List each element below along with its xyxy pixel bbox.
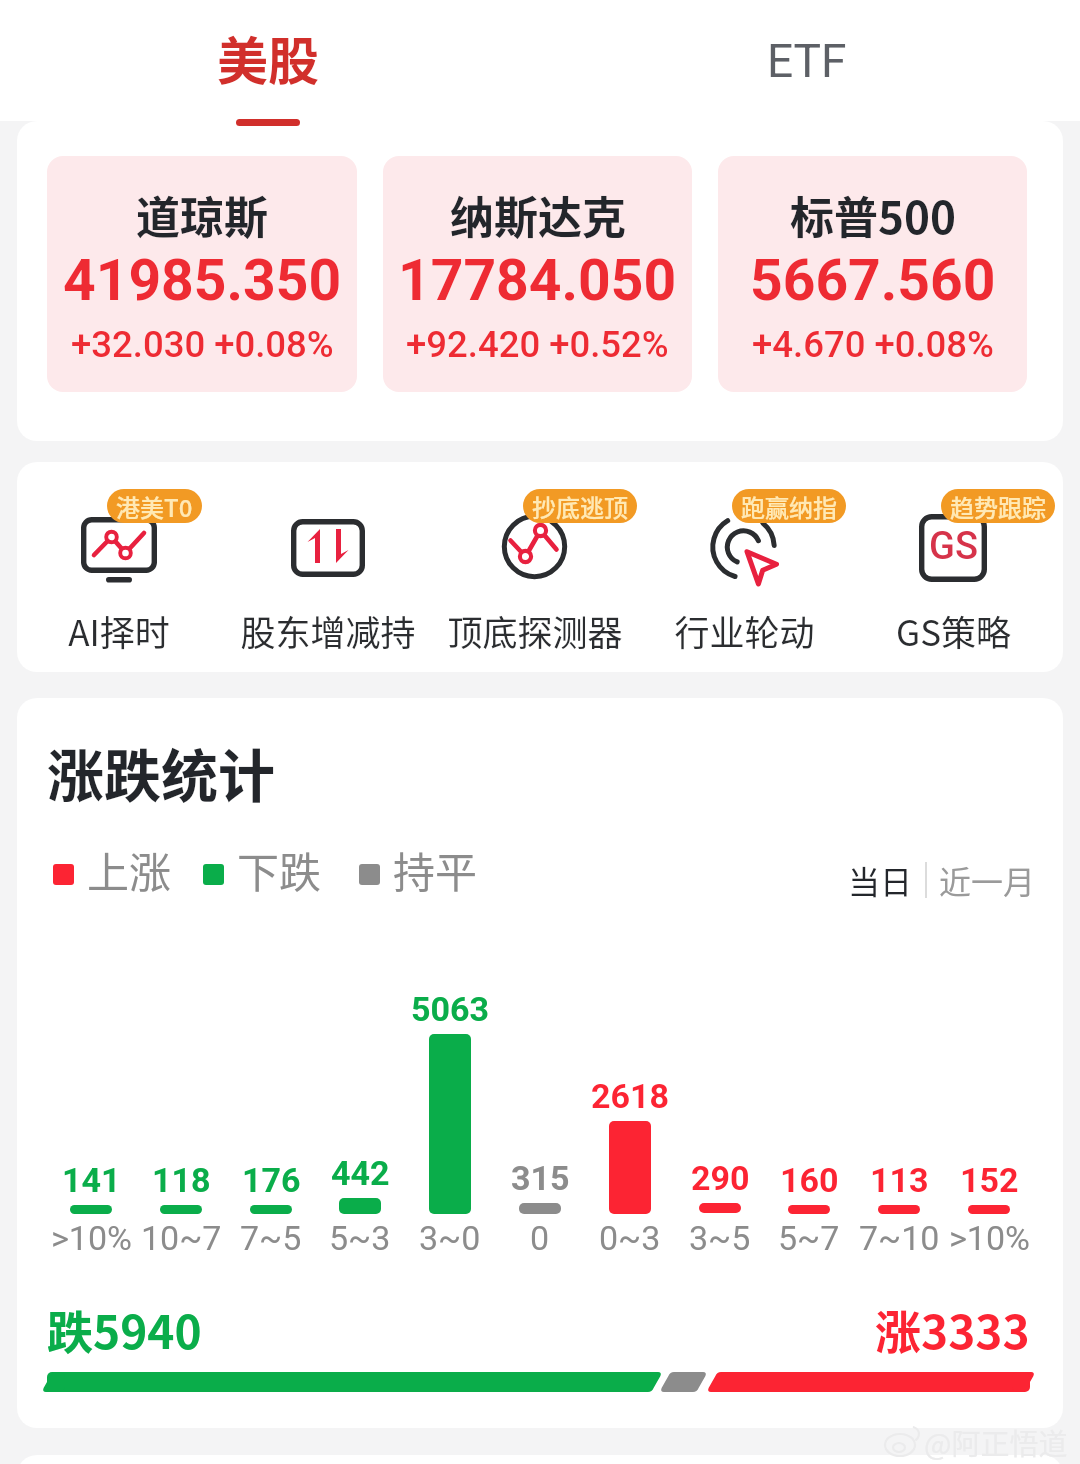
staticText: 5667.560 — [750, 247, 996, 314]
staticText: 5063 — [411, 989, 490, 1029]
staticText: 跌5940 — [47, 1296, 202, 1363]
staticText: @阿正悟道 — [924, 1421, 1068, 1463]
staticText: 0~3 — [599, 1218, 661, 1258]
staticText: +32.030 +0.08% — [71, 323, 334, 366]
button[interactable]: 顶底探测器 — [435, 462, 635, 662]
staticText: 标普500 — [790, 183, 956, 247]
staticText: >10% — [51, 1218, 132, 1258]
button[interactable]: 美股 — [178, 0, 358, 121]
button[interactable]: 纳斯达克 — [383, 156, 692, 392]
staticText: +92.420 +0.52% — [406, 323, 669, 366]
staticText: 5~7 — [778, 1218, 840, 1258]
button[interactable]: AI择时 — [19, 462, 219, 662]
staticText: 股东增减持 — [240, 605, 416, 656]
staticText: >10% — [949, 1218, 1030, 1258]
button[interactable]: 标普500 — [718, 156, 1027, 392]
staticText: 抄底逃顶 — [532, 489, 628, 523]
staticText: 3~5 — [689, 1218, 751, 1258]
staticText: 7~5 — [240, 1218, 302, 1258]
button[interactable]: ETF — [717, 0, 897, 121]
button[interactable]: 近一月 — [935, 851, 1040, 909]
staticText: 当日 — [848, 857, 913, 903]
staticText: 442 — [331, 1153, 390, 1193]
staticText: 7~10 — [859, 1218, 940, 1258]
staticText: 315 — [511, 1158, 570, 1198]
other: 股东增减持 — [288, 513, 368, 585]
staticText: 美股 — [217, 21, 320, 95]
staticText: 176 — [242, 1160, 301, 1200]
staticText: 3~0 — [419, 1218, 481, 1258]
staticText: 5~3 — [329, 1218, 391, 1258]
other: 行业轮动 — [704, 513, 784, 585]
staticText: 118 — [152, 1160, 211, 1200]
other: 顶底探测器 — [495, 513, 575, 585]
staticText: 跑赢纳指 — [741, 489, 837, 523]
button[interactable]: 当日 — [844, 851, 917, 909]
staticText: 152 — [960, 1160, 1019, 1200]
staticText: 涨跌统计 — [47, 731, 275, 814]
staticText: 下跌 — [237, 839, 322, 900]
staticText: +4.670 +0.08% — [752, 323, 994, 366]
staticText: ETF — [767, 34, 847, 88]
staticText: 141 — [62, 1160, 121, 1200]
staticText: 10~7 — [141, 1218, 222, 1258]
staticText: 趋势跟踪 — [950, 489, 1046, 523]
staticText: GS策略 — [896, 605, 1011, 656]
staticText: 290 — [691, 1158, 750, 1198]
button[interactable]: 道琼斯 — [47, 156, 357, 392]
staticText: 113 — [870, 1160, 929, 1200]
other: AI择时 — [79, 513, 159, 585]
button[interactable]: 行业轮动 — [644, 462, 844, 662]
staticText: 160 — [780, 1160, 839, 1200]
staticText: 港美T0 — [116, 489, 193, 523]
staticText: 41985.350 — [63, 247, 342, 314]
staticText: GS — [929, 524, 978, 569]
button[interactable]: GS策略 — [853, 462, 1053, 662]
staticText: 纳斯达克 — [450, 183, 626, 247]
staticText: 涨3333 — [875, 1296, 1030, 1363]
staticText: 上涨 — [87, 839, 172, 900]
staticText: 顶底探测器 — [447, 605, 623, 656]
button[interactable]: 股东增减持 — [228, 462, 428, 662]
staticText: 0 — [530, 1218, 550, 1258]
staticText: 2618 — [591, 1076, 670, 1116]
other: GS策略 — [913, 513, 993, 585]
staticText: 行业轮动 — [674, 605, 815, 656]
staticText: 持平 — [393, 839, 478, 900]
staticText: 近一月 — [939, 857, 1036, 903]
staticText: 道琼斯 — [136, 183, 268, 247]
staticText: AI择时 — [68, 605, 170, 656]
staticText: 17784.050 — [398, 247, 677, 314]
